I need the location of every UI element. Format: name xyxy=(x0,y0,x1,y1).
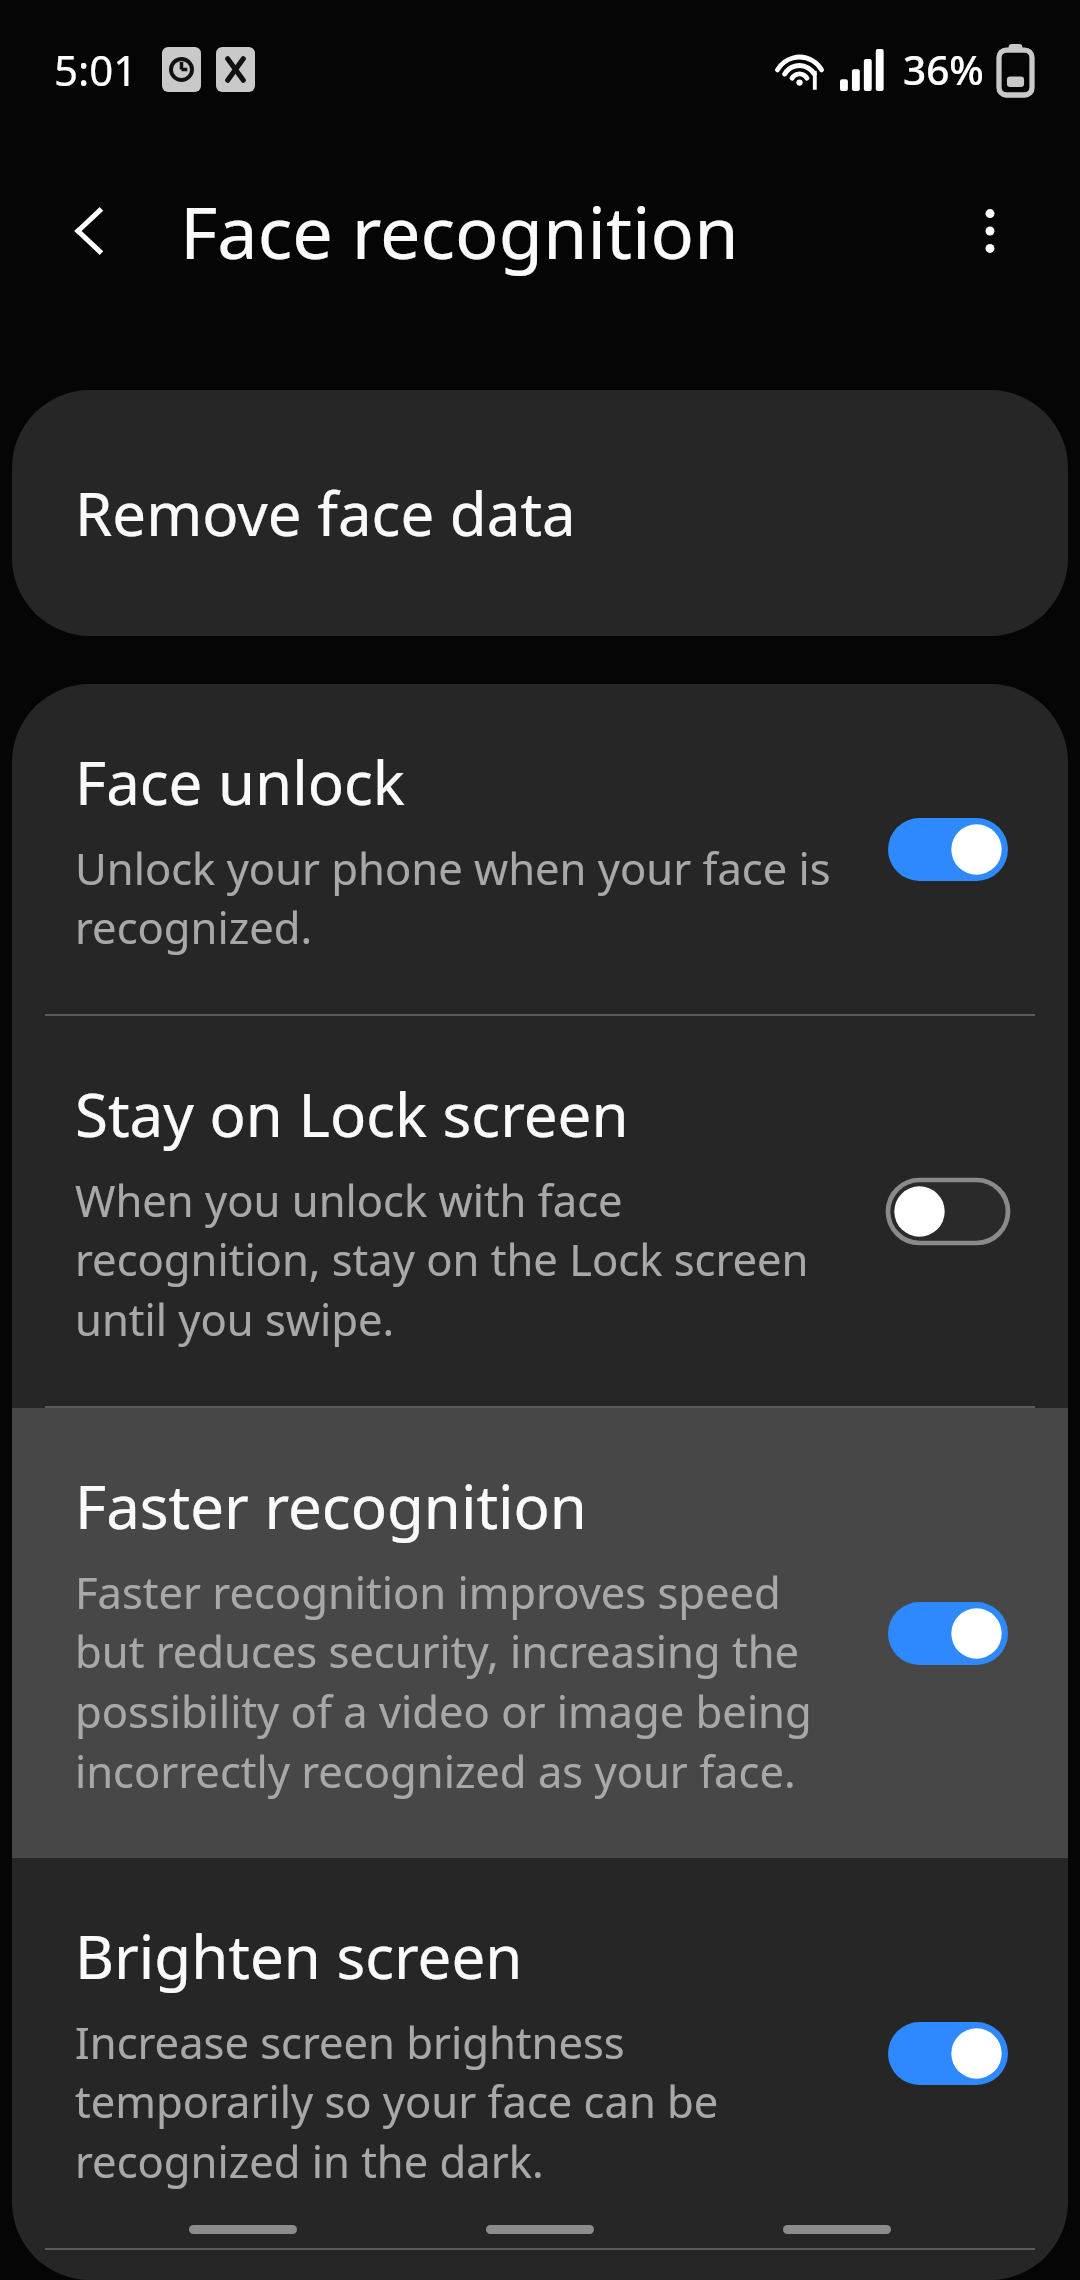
staticText: 36% xyxy=(903,42,984,97)
staticText: Face recognition xyxy=(180,182,739,280)
button[interactable]: Off xyxy=(870,1151,1026,1271)
button[interactable]: Brighten screen xyxy=(12,1858,1068,2248)
button[interactable] xyxy=(189,2225,297,2234)
button[interactable]: On xyxy=(870,1573,1026,1693)
button[interactable]: Faster recognition xyxy=(12,1408,1068,1858)
button[interactable]: On xyxy=(870,1993,1026,2113)
button[interactable]: Remove face data xyxy=(12,390,1068,636)
staticText: Brighten screen xyxy=(75,1915,523,1997)
button[interactable]: On xyxy=(870,789,1026,909)
staticText: Stay on Lock screen xyxy=(75,1073,629,1155)
button[interactable] xyxy=(783,2225,891,2234)
staticText: Faster recognition xyxy=(75,1465,587,1547)
button[interactable]: Stay on Lock screen xyxy=(12,1016,1068,1406)
staticText: Increase screen brightness temporarily s… xyxy=(75,2012,840,2191)
staticText: Unlock your phone when your face is reco… xyxy=(75,838,840,957)
staticText: 5:01 xyxy=(54,41,138,98)
staticText: Remove face data xyxy=(75,472,576,554)
button[interactable]: Face unlock xyxy=(12,684,1068,1014)
button[interactable]: Navigate up xyxy=(18,159,162,303)
button[interactable]: More options xyxy=(918,159,1062,303)
button[interactable] xyxy=(486,2225,594,2234)
staticText: Faster recognition improves speed but re… xyxy=(75,1562,840,1801)
staticText: Face unlock xyxy=(75,741,405,823)
button[interactable]: Samsung Pass xyxy=(12,2250,1068,2280)
staticText: When you unlock with face recognition, s… xyxy=(75,1170,840,1349)
